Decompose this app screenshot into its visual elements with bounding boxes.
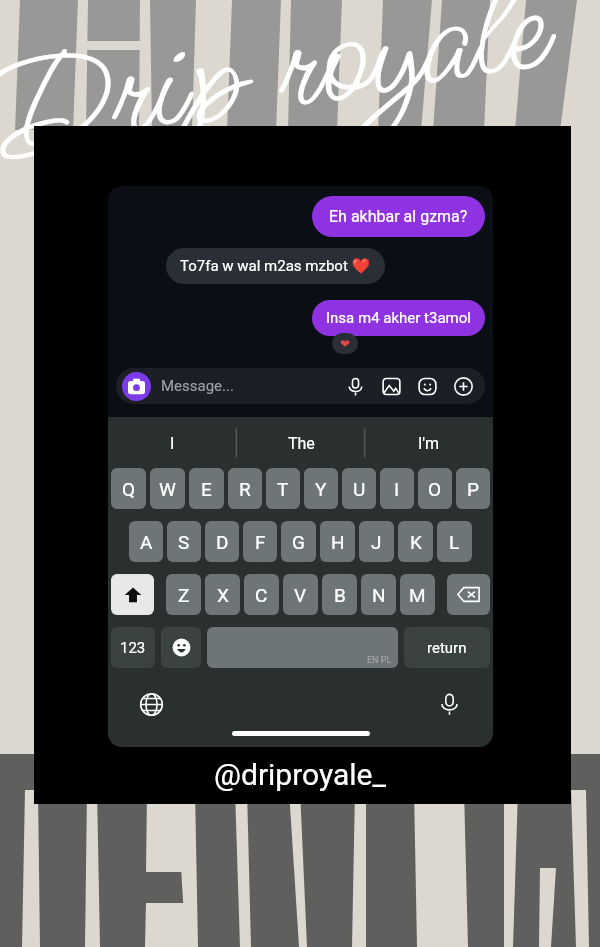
button[interactable]: X: [205, 574, 240, 615]
button[interactable]: Y: [304, 468, 338, 509]
button[interactable]: T: [266, 468, 300, 509]
staticText: Q: [122, 478, 136, 500]
staticText: E: [201, 478, 212, 500]
button[interactable]: F: [243, 521, 277, 562]
button[interactable]: Backspace: [447, 574, 490, 615]
button[interactable]: N: [361, 574, 396, 615]
button[interactable]: I: [108, 417, 237, 469]
button[interactable]: D: [205, 521, 239, 562]
button[interactable]: 123: [111, 627, 155, 668]
button[interactable]: A: [129, 521, 163, 562]
staticText: M: [409, 584, 426, 606]
staticText: L: [449, 531, 460, 553]
button[interactable]: Change language: [140, 693, 163, 716]
staticText: K: [410, 531, 422, 553]
staticText: EN PL: [367, 655, 392, 666]
staticText: O: [428, 478, 442, 500]
button[interactable]: The: [237, 417, 365, 469]
staticText: J: [371, 531, 382, 553]
button[interactable]: Z: [166, 574, 201, 615]
staticText: A: [140, 531, 153, 553]
button[interactable]: To7fa w wal m2as mzbot ❤: [166, 248, 385, 284]
button[interactable]: Eh akhbar al gzma?: [312, 196, 485, 237]
staticText: return: [427, 639, 467, 657]
staticText: ❤: [340, 337, 351, 351]
staticText: X: [217, 584, 229, 606]
button[interactable]: C: [244, 574, 279, 615]
button[interactable]: Emoji: [161, 627, 201, 668]
staticText: P: [467, 478, 479, 500]
button[interactable]: J: [359, 521, 394, 562]
button[interactable]: E: [189, 468, 224, 509]
staticText: S: [178, 531, 190, 553]
button[interactable]: I'm: [365, 417, 493, 469]
button[interactable]: Voice input: [438, 693, 461, 716]
staticText: I: [394, 478, 400, 500]
button[interactable]: S: [167, 521, 201, 562]
button[interactable]: R: [228, 468, 262, 509]
button[interactable]: U: [342, 468, 376, 509]
button[interactable]: K: [398, 521, 433, 562]
button[interactable]: Voice message: [346, 377, 365, 396]
staticText: V: [294, 584, 307, 606]
button[interactable]: W: [150, 468, 185, 509]
staticText: The: [288, 434, 315, 453]
staticText: @driproyale_: [0, 757, 600, 792]
button[interactable]: Insa m4 akher t3amol: [312, 300, 485, 336]
button[interactable]: Camera: [122, 372, 151, 401]
button[interactable]: M: [400, 574, 435, 615]
button[interactable]: Sticker: [418, 377, 437, 396]
button[interactable]: I: [380, 468, 414, 509]
staticText: T: [277, 478, 289, 500]
button[interactable]: O: [418, 468, 452, 509]
staticText: I: [170, 434, 175, 453]
button[interactable]: V: [283, 574, 318, 615]
staticText: I'm: [418, 434, 440, 453]
button[interactable]: G: [281, 521, 316, 562]
staticText: C: [255, 584, 268, 606]
staticText: R: [239, 478, 251, 500]
staticText: Y: [315, 478, 327, 500]
staticText: F: [255, 531, 266, 553]
staticText: G: [292, 531, 305, 553]
button[interactable]: More options: [454, 377, 473, 396]
button[interactable]: Q: [111, 468, 146, 509]
staticText: B: [334, 584, 346, 606]
staticText: 123: [120, 639, 146, 657]
staticText: H: [331, 531, 345, 553]
button[interactable]: Gallery: [382, 377, 401, 396]
button[interactable]: Shift: [111, 574, 154, 615]
button[interactable]: return: [404, 627, 490, 668]
staticText: Insa m4 akher t3amol: [326, 309, 471, 327]
button[interactable]: P: [456, 468, 490, 509]
staticText: To7fa w wal m2as mzbot ❤: [180, 257, 371, 275]
staticText: Drip royale: [0, 0, 586, 215]
button[interactable]: B: [322, 574, 357, 615]
staticText: D: [216, 531, 229, 553]
staticText: W: [159, 478, 176, 500]
staticText: U: [353, 478, 366, 500]
staticText: Message...: [161, 377, 234, 395]
button[interactable]: H: [320, 521, 355, 562]
button[interactable]: L: [437, 521, 472, 562]
button[interactable]: Space: [207, 627, 398, 668]
staticText: Z: [178, 584, 190, 606]
staticText: N: [372, 584, 386, 606]
staticText: Eh akhbar al gzma?: [329, 207, 468, 226]
